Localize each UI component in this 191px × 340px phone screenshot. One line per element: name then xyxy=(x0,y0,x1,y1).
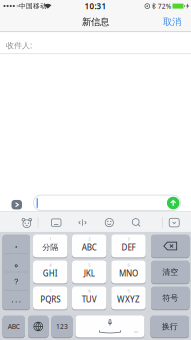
button[interactable]: 2 xyxy=(72,234,106,257)
button[interactable]: 换行 xyxy=(150,315,189,337)
button[interactable]: 搜索 xyxy=(131,217,142,228)
staticText: 72% xyxy=(158,2,172,11)
staticText: 清空 xyxy=(162,267,178,277)
button[interactable]: 删除 xyxy=(151,234,189,257)
staticText: JKL xyxy=(84,268,95,279)
staticText: 5 xyxy=(88,262,90,268)
button[interactable]: 9 xyxy=(111,286,146,309)
staticText: 1 xyxy=(49,236,51,242)
button[interactable]: 123 xyxy=(51,315,72,337)
button[interactable]: 剪贴板 xyxy=(50,217,62,228)
button[interactable]: 取消 xyxy=(157,13,187,31)
staticText: 3 xyxy=(127,236,129,242)
button[interactable]: 1 xyxy=(33,234,67,257)
button[interactable]: 输入法 xyxy=(21,217,33,228)
staticText: 中国移动 xyxy=(19,2,47,10)
button[interactable]: 标点 xyxy=(2,234,30,309)
staticText: 10:31 xyxy=(84,1,106,11)
staticText: 新信息 xyxy=(82,16,109,28)
staticText: MNO xyxy=(119,268,138,279)
button[interactable]: 收起键盘 xyxy=(168,217,180,228)
staticText: GHI xyxy=(43,268,58,279)
button[interactable]: 6 xyxy=(111,260,146,283)
staticText: 4 xyxy=(49,262,51,268)
button[interactable]: ABC xyxy=(2,315,25,337)
staticText: 9 xyxy=(127,288,129,294)
button[interactable]: 光标移动 xyxy=(77,217,88,228)
staticText: 分隔 xyxy=(42,242,58,252)
staticText: ABC xyxy=(8,322,20,331)
staticText: 收件人: xyxy=(6,40,32,51)
staticText: 123 xyxy=(56,322,68,331)
staticText: DEF xyxy=(121,242,135,253)
staticText: 8 xyxy=(88,288,90,294)
staticText: 6 xyxy=(127,262,129,268)
staticText: 7 xyxy=(49,288,51,294)
staticText: ？ xyxy=(12,277,20,286)
button[interactable]: 清空 xyxy=(151,260,189,283)
button[interactable]: 4 xyxy=(33,260,67,283)
staticText: 换行 xyxy=(162,322,178,331)
button[interactable]: 展开 xyxy=(11,200,22,209)
button[interactable]: 3 xyxy=(111,234,146,257)
button[interactable]: 发送 xyxy=(167,197,179,209)
staticText: 2 xyxy=(88,236,90,242)
button[interactable]: 5 xyxy=(72,260,106,283)
button[interactable]: 表情 xyxy=(104,217,115,228)
button[interactable]: 切换输入法 xyxy=(28,315,48,337)
staticText: 取消 xyxy=(163,16,181,28)
staticText: PQRS xyxy=(40,294,60,305)
staticText: 符号 xyxy=(162,293,178,303)
staticText: WXYZ xyxy=(117,294,140,305)
button[interactable]: 8 xyxy=(72,286,106,309)
staticText: TUV xyxy=(82,294,97,305)
staticText: ABC xyxy=(82,242,97,253)
button[interactable]: 7 xyxy=(33,286,67,309)
button[interactable]: 空格 xyxy=(75,315,144,337)
button[interactable]: 符号 xyxy=(151,286,189,309)
